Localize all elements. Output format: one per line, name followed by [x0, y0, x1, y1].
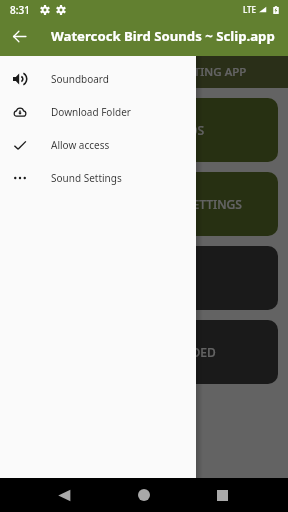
- button[interactable]: Allow access: [0, 128, 196, 161]
- button[interactable]: SOUNDS DOWNLOADED: [10, 320, 278, 384]
- staticText: WATERCOCK BIRD SOUNDS: [49, 122, 205, 138]
- staticText: SOUNDS DOWNLOADED: [77, 344, 216, 360]
- staticText: WATERCOCK SOUND SETTINGS: [66, 196, 242, 212]
- button[interactable]: Back: [0, 19, 38, 53]
- staticText: LTE: [243, 4, 257, 15]
- staticText: Sound Settings: [51, 171, 122, 185]
- button[interactable]: Recent apps: [205, 478, 239, 512]
- button[interactable]: Home: [127, 478, 161, 512]
- staticText: Allow access: [51, 138, 110, 152]
- button[interactable]: WATERCOCK BIRD SOUNDS: [10, 98, 278, 162]
- button[interactable]: BIRD SOUND SETTING APP: [0, 56, 288, 88]
- button[interactable]: [0, 56, 288, 478]
- staticText: 8:31: [10, 3, 30, 17]
- button[interactable]: Soundboard: [0, 62, 196, 95]
- staticText: Download Folder: [51, 105, 131, 119]
- button[interactable]: WATERCOCK FAVOURITES: [10, 246, 278, 310]
- staticText: BIRD SOUND SETTING APP: [100, 64, 247, 80]
- button[interactable]: Back: [47, 478, 81, 512]
- button[interactable]: Sound Settings: [0, 161, 196, 194]
- button[interactable]: WATERCOCK SOUND SETTINGS: [10, 172, 278, 236]
- staticText: Soundboard: [51, 72, 109, 86]
- button[interactable]: Download Folder: [0, 95, 196, 128]
- staticText: Watercock Bird Sounds ~ Sclip.app: [51, 27, 275, 45]
